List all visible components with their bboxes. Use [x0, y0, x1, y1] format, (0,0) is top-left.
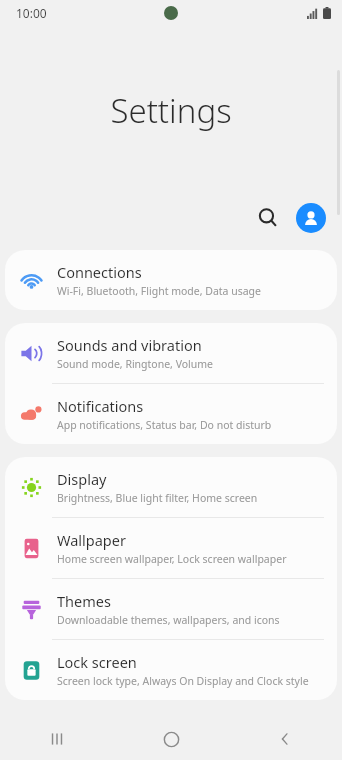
button[interactable]: Notifications — [5, 384, 337, 444]
button[interactable]: Recents — [0, 718, 114, 760]
button[interactable]: Display — [5, 457, 337, 517]
button[interactable]: Back — [228, 718, 342, 760]
staticText: Sound mode, Ringtone, Volume — [57, 357, 214, 371]
staticText: Brightness, Blue light filter, Home scre… — [57, 491, 258, 505]
button[interactable]: Lock screen — [5, 640, 337, 700]
staticText: Themes — [57, 591, 111, 611]
button[interactable]: Connections — [5, 250, 337, 310]
button[interactable]: Search — [248, 198, 288, 238]
staticText: Wallpaper — [57, 530, 126, 550]
staticText: Downloadable themes, wallpapers, and ico… — [57, 613, 280, 627]
button[interactable]: Home — [114, 718, 228, 760]
staticText: 10:00 — [16, 5, 47, 21]
staticText: Notifications — [57, 396, 144, 416]
staticText: Connections — [57, 262, 142, 282]
staticText: Lock screen — [57, 652, 137, 672]
button[interactable]: Account — [296, 203, 326, 233]
staticText: Wi-Fi, Bluetooth, Flight mode, Data usag… — [57, 284, 262, 298]
button[interactable]: Themes — [5, 579, 337, 639]
staticText: Display — [57, 469, 107, 489]
button[interactable]: Sounds and vibration — [5, 323, 337, 383]
button[interactable]: Wallpaper — [5, 518, 337, 578]
staticText: Home screen wallpaper, Lock screen wallp… — [57, 552, 287, 566]
staticText: Sounds and vibration — [57, 335, 202, 355]
staticText: Screen lock type, Always On Display and … — [57, 674, 309, 688]
staticText: Settings — [110, 88, 232, 133]
staticText: App notifications, Status bar, Do not di… — [57, 418, 272, 432]
